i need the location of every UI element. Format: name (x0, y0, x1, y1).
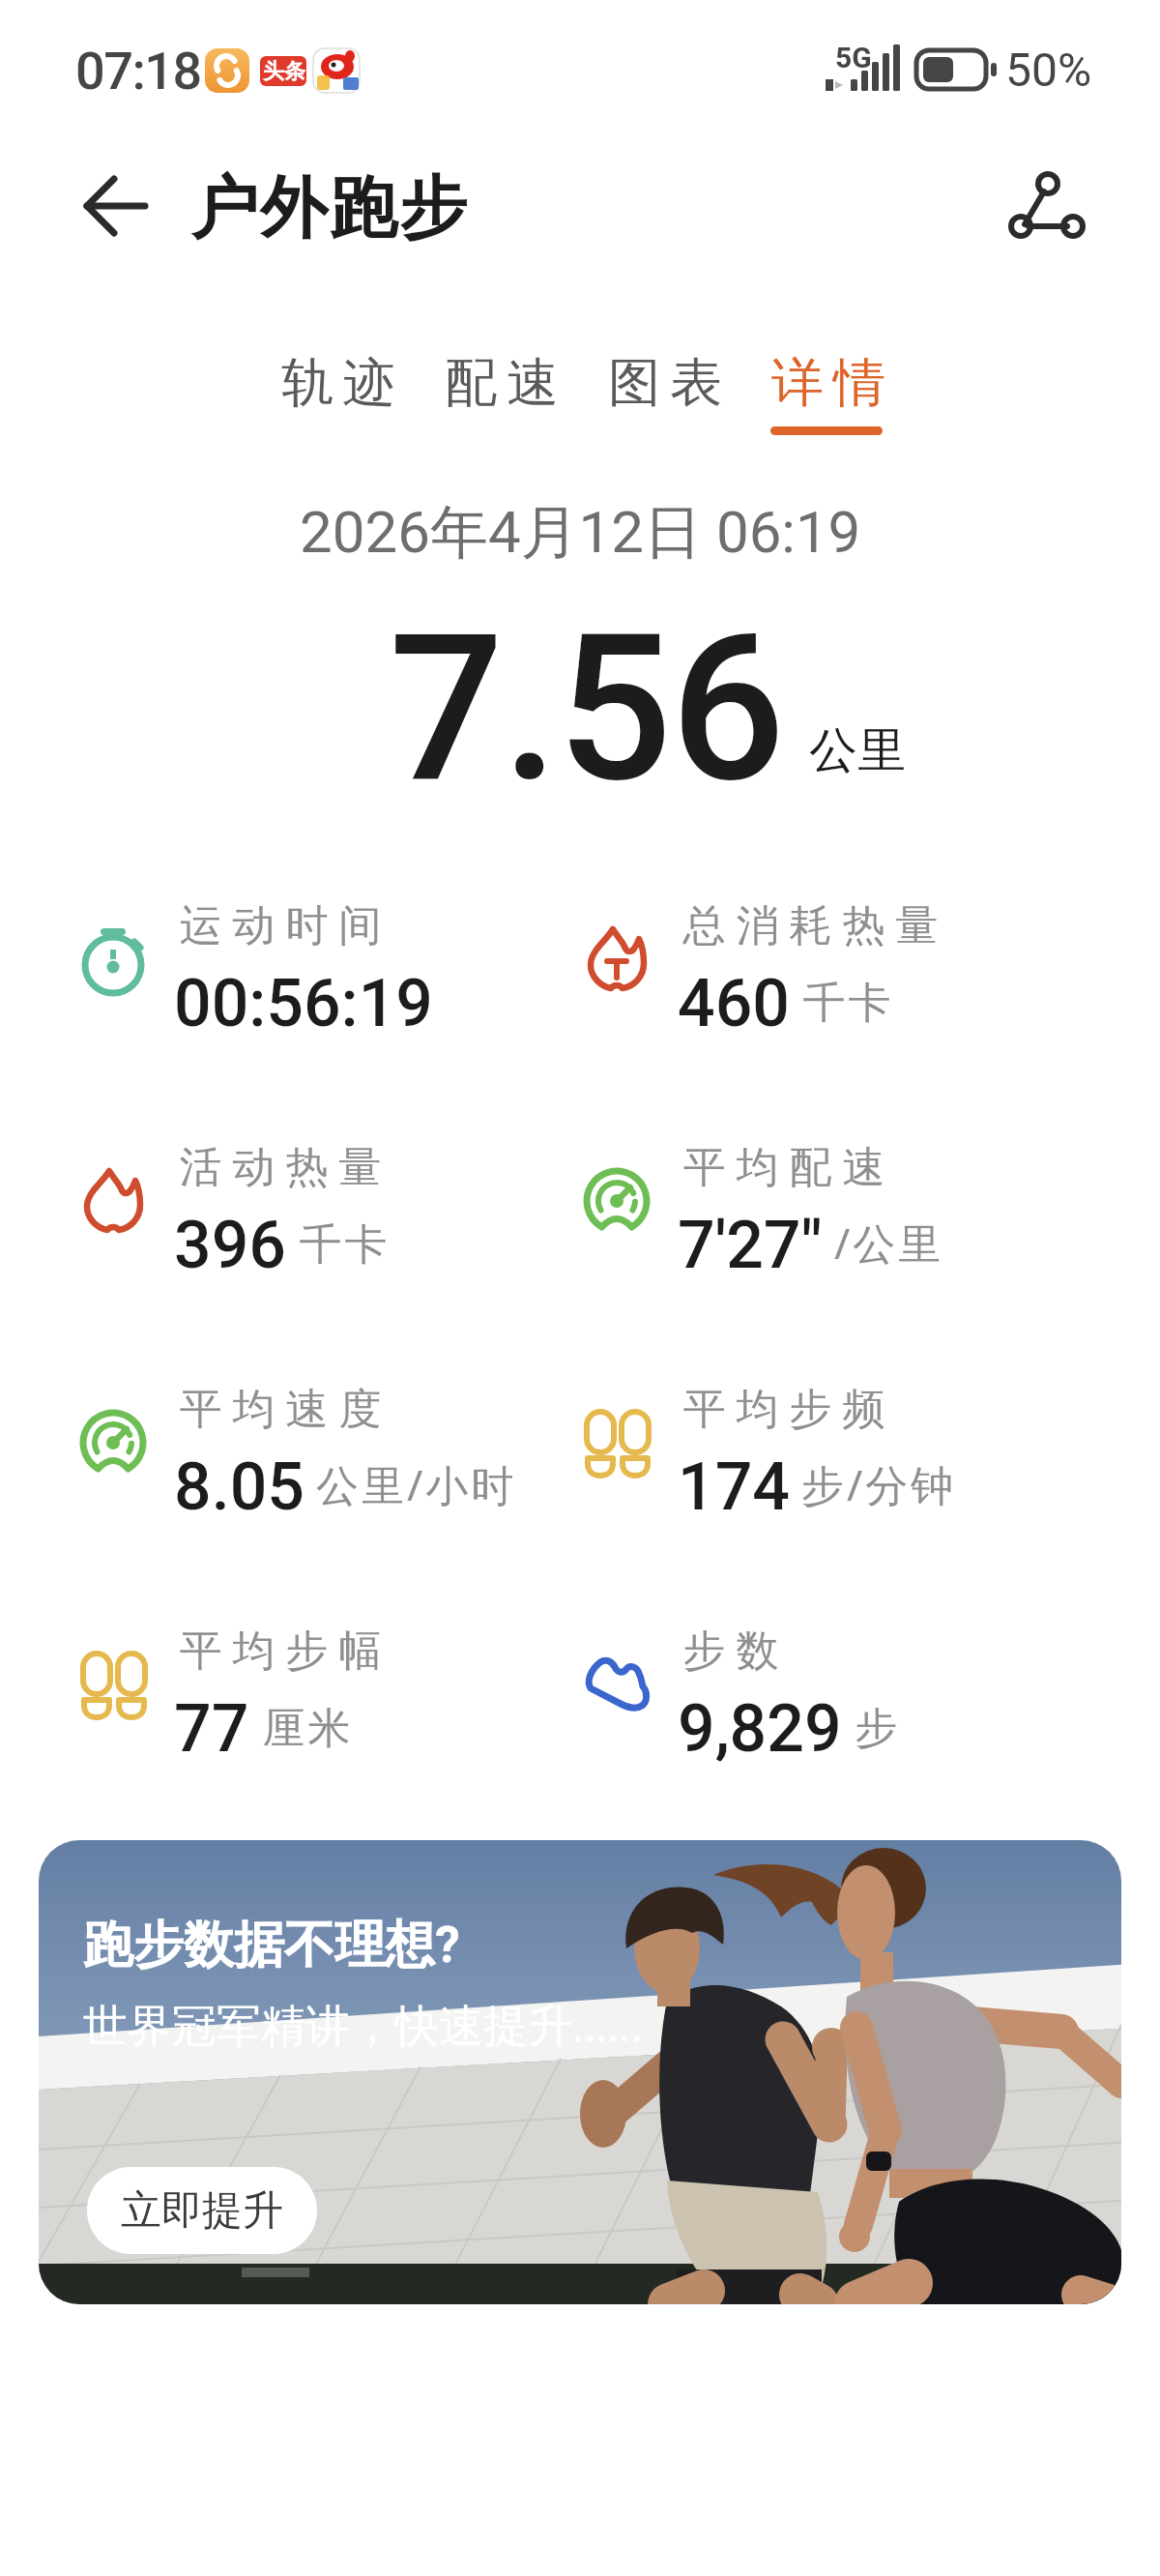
staticText: 平均速度 (174, 1383, 387, 1436)
staticText: 07:18 (75, 41, 201, 102)
staticText: 轨迹 (276, 350, 400, 416)
staticText: 8.05 (174, 1449, 304, 1526)
staticText: 平均步频 (678, 1383, 890, 1436)
staticText: 详情 (767, 350, 890, 416)
staticText: 步数 (678, 1625, 784, 1678)
staticText: 头条 (263, 58, 305, 85)
staticText: 460 (678, 965, 790, 1042)
staticText: 总消耗热量 (678, 899, 943, 952)
staticText: 千卡 (801, 977, 892, 1030)
staticText: 厘米 (261, 1702, 352, 1755)
staticText: 公里/小时 (316, 1455, 517, 1513)
staticText: 活动热量 (174, 1141, 387, 1194)
staticText: 跑步数据不理想? (83, 1914, 460, 1977)
staticText: 步 (854, 1702, 899, 1755)
staticText: 7'27" (678, 1207, 823, 1284)
staticText: 平均步幅 (174, 1625, 387, 1678)
staticText: 运动时间 (174, 899, 387, 952)
staticText: 00:56:19 (174, 965, 433, 1042)
staticText: 图表 (603, 350, 727, 416)
staticText: 步/分钟 (801, 1455, 957, 1513)
staticText: 千卡 (298, 1218, 389, 1272)
staticText: 5G (835, 41, 872, 74)
staticText: /公里 (834, 1214, 944, 1272)
staticText: 户外跑步 (189, 166, 468, 251)
staticText: 174 (678, 1449, 790, 1526)
staticText: 立即提升 (121, 2185, 283, 2237)
staticText: 2026年4月12日 06:19 (300, 496, 861, 570)
staticText: 平均配速 (678, 1141, 890, 1194)
staticText: 396 (174, 1207, 286, 1284)
staticText: 77 (174, 1690, 249, 1768)
staticText: 世界冠军精讲，快速提升...... (83, 1999, 643, 2055)
staticText: 7.56 (389, 590, 784, 828)
staticText: 50% (1005, 43, 1092, 97)
staticText: 公里 (809, 720, 906, 781)
staticText: 配速 (440, 350, 564, 416)
staticText: 9,829 (678, 1690, 842, 1768)
